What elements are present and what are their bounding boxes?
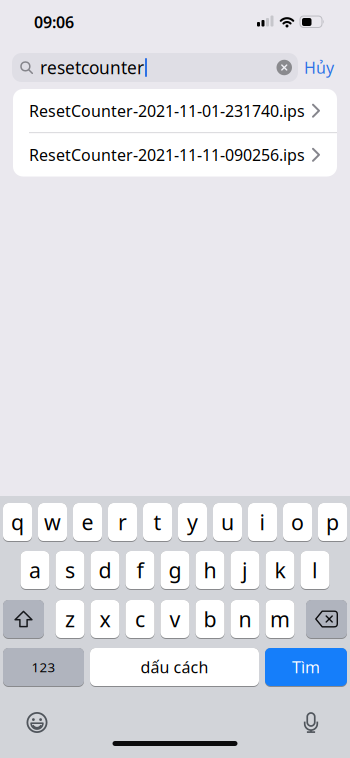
staticText: v <box>169 605 180 633</box>
staticText: ResetCounter-2021-11-01-231740.ips <box>29 100 305 121</box>
button[interactable]: f <box>125 551 154 590</box>
staticText: z <box>65 605 75 633</box>
button[interactable]: Tìm <box>265 648 347 687</box>
button[interactable]: i <box>248 503 277 542</box>
staticText: w <box>44 508 61 536</box>
button[interactable]: l <box>300 551 329 590</box>
button[interactable]: j <box>230 551 259 590</box>
button[interactable]: a <box>20 551 49 590</box>
button[interactable]: x <box>90 600 119 639</box>
button[interactable]: Delete <box>306 600 347 639</box>
staticText: b <box>203 605 216 633</box>
button[interactable]: y <box>178 503 207 542</box>
staticText: x <box>99 605 110 633</box>
button[interactable]: Numbers <box>3 648 84 687</box>
staticText: a <box>29 556 41 584</box>
button[interactable]: Hủy <box>304 57 334 78</box>
staticText: o <box>291 508 304 536</box>
button[interactable]: k <box>265 551 294 590</box>
button[interactable]: d <box>90 551 119 590</box>
staticText: j <box>242 556 248 584</box>
button[interactable]: z <box>55 600 84 639</box>
staticText: 123 <box>31 658 55 676</box>
button[interactable]: q <box>3 503 32 542</box>
staticText: dấu cách <box>140 656 208 678</box>
button[interactable]: Dictate <box>302 712 319 733</box>
staticText: Tìm <box>292 656 320 678</box>
staticText: h <box>203 556 216 584</box>
staticText: u <box>221 508 234 536</box>
button[interactable]: e <box>73 503 102 542</box>
staticText: r <box>118 508 127 536</box>
staticText: n <box>238 605 251 633</box>
button[interactable]: w <box>38 503 67 542</box>
staticText: y <box>187 508 198 536</box>
staticText: i <box>259 508 265 536</box>
staticText: k <box>274 556 285 584</box>
staticText: c <box>135 605 145 633</box>
button[interactable]: p <box>318 503 347 542</box>
staticText: l <box>312 556 318 584</box>
button[interactable]: Clear text <box>276 60 292 75</box>
button[interactable]: Shift <box>3 600 44 639</box>
staticText: f <box>136 556 143 584</box>
staticText: q <box>11 508 24 536</box>
button[interactable]: ResetCounter-2021-11-01-231740.ips <box>13 89 337 132</box>
button[interactable]: m <box>265 600 294 639</box>
button[interactable]: g <box>160 551 189 590</box>
button[interactable]: u <box>213 503 242 542</box>
button[interactable]: s <box>55 551 84 590</box>
staticText: Hủy <box>304 57 334 78</box>
staticText: m <box>270 605 290 633</box>
button[interactable]: r <box>108 503 137 542</box>
staticText: g <box>168 556 181 584</box>
staticText: resetcounter <box>40 56 144 79</box>
button[interactable]: b <box>195 600 224 639</box>
staticText: p <box>326 508 339 536</box>
button[interactable]: o <box>283 503 312 542</box>
button[interactable]: ResetCounter-2021-11-11-090256.ips <box>13 133 337 176</box>
staticText: t <box>153 508 161 536</box>
staticText: s <box>65 556 75 584</box>
staticText: d <box>98 556 111 584</box>
staticText: e <box>81 508 93 536</box>
button[interactable]: t <box>143 503 172 542</box>
staticText: 09:06 <box>34 11 74 33</box>
button[interactable]: h <box>195 551 224 590</box>
button[interactable]: dấu cách <box>90 648 259 687</box>
button[interactable]: n <box>230 600 259 639</box>
staticText: ResetCounter-2021-11-11-090256.ips <box>29 144 305 165</box>
button[interactable]: v <box>160 600 189 639</box>
button[interactable]: c <box>125 600 154 639</box>
button[interactable]: Emoji <box>26 712 47 733</box>
